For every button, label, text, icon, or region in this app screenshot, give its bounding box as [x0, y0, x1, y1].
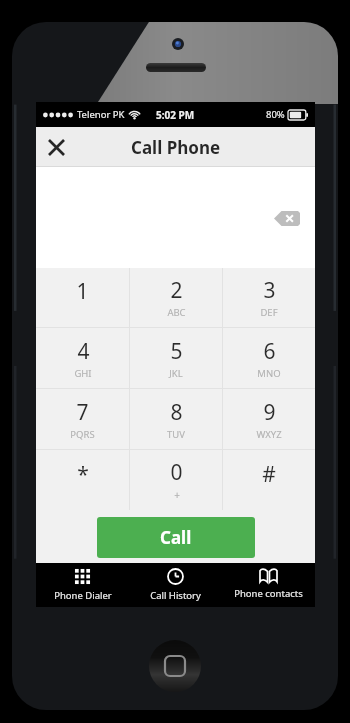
staticText: 3 [263, 276, 276, 305]
button[interactable]: Home [149, 640, 201, 692]
staticText: Call History [150, 589, 201, 602]
button[interactable]: 6 [223, 328, 315, 388]
button[interactable]: 4 [36, 328, 129, 388]
staticText: 0 [170, 458, 183, 487]
staticText: 5:02 PM [156, 108, 195, 122]
staticText: 6 [263, 337, 276, 366]
button[interactable]: Phone Dialer [36, 563, 129, 607]
staticText: Phone Dialer [54, 589, 112, 602]
staticText: 1 [76, 277, 89, 306]
button[interactable]: 7 [36, 389, 129, 449]
staticText: * [77, 460, 89, 489]
button[interactable]: 0 [130, 450, 222, 510]
staticText: ABC [167, 306, 186, 319]
staticText: + [174, 488, 180, 502]
button[interactable]: 3 [223, 268, 315, 327]
staticText: 5 [170, 337, 183, 366]
staticText: 8 [170, 398, 183, 427]
staticText: TUV [167, 428, 185, 441]
staticText: 9 [263, 398, 276, 427]
staticText: 80% [266, 108, 285, 121]
staticText: # [262, 460, 276, 489]
button[interactable]: Close [36, 127, 76, 167]
staticText: JKL [169, 367, 183, 380]
button[interactable]: 5 [130, 328, 222, 388]
staticText: 2 [170, 276, 183, 305]
staticText: Call Phone [131, 136, 221, 159]
staticText: Call [160, 526, 192, 549]
staticText: MNO [257, 367, 281, 380]
staticText: Phone contacts [234, 587, 303, 600]
button[interactable]: # [223, 450, 315, 510]
button[interactable]: 8 [130, 389, 222, 449]
staticText: WXYZ [256, 428, 282, 441]
button[interactable]: Call [97, 517, 255, 558]
button[interactable]: * [36, 450, 129, 510]
staticText: GHI [74, 367, 92, 380]
button[interactable]: Backspace [272, 206, 302, 230]
staticText: DEF [260, 306, 278, 319]
button[interactable]: 2 [130, 268, 222, 327]
staticText: 7 [76, 398, 89, 427]
button[interactable]: Call History [129, 563, 222, 607]
staticText: PQRS [70, 428, 95, 441]
staticText: Telenor PK [77, 108, 125, 121]
staticText: 4 [77, 337, 90, 366]
button[interactable]: 1 [36, 268, 129, 327]
button[interactable]: 9 [223, 389, 315, 449]
button[interactable]: Phone contacts [222, 563, 315, 607]
